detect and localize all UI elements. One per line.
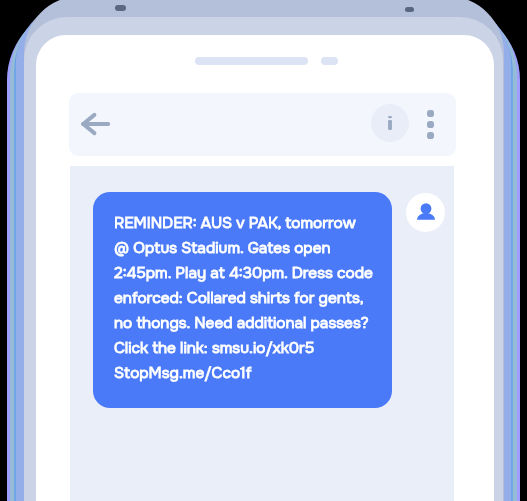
button[interactable]: Back (80, 108, 112, 140)
staticText: REMINDER: AUS v PAK, tomorrow @ Optus St… (114, 213, 373, 383)
button[interactable]: Back (69, 93, 456, 156)
button[interactable]: Conversation info (371, 104, 409, 142)
button[interactable]: REMINDER: AUS v PAK, tomorrow @ Optus St… (93, 192, 392, 408)
button[interactable]: Contact avatar (406, 193, 445, 232)
button[interactable]: More options (412, 106, 449, 143)
